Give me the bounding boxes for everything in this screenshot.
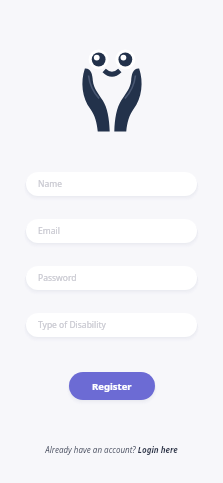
staticText: Register [92, 380, 132, 393]
staticText: Type of Disability [38, 319, 106, 331]
staticText: Email [38, 225, 60, 237]
button[interactable]: Already have an account? Login here [0, 434, 223, 465]
staticText: Already have an account? Login here [45, 444, 178, 455]
button[interactable]: Register [69, 372, 155, 400]
button[interactable]: Email [26, 219, 197, 243]
button[interactable]: Type of Disability [26, 313, 197, 337]
button[interactable]: Name [26, 172, 197, 196]
button[interactable]: Password [26, 266, 197, 290]
staticText: Password [38, 272, 77, 284]
staticText: Name [38, 178, 62, 190]
